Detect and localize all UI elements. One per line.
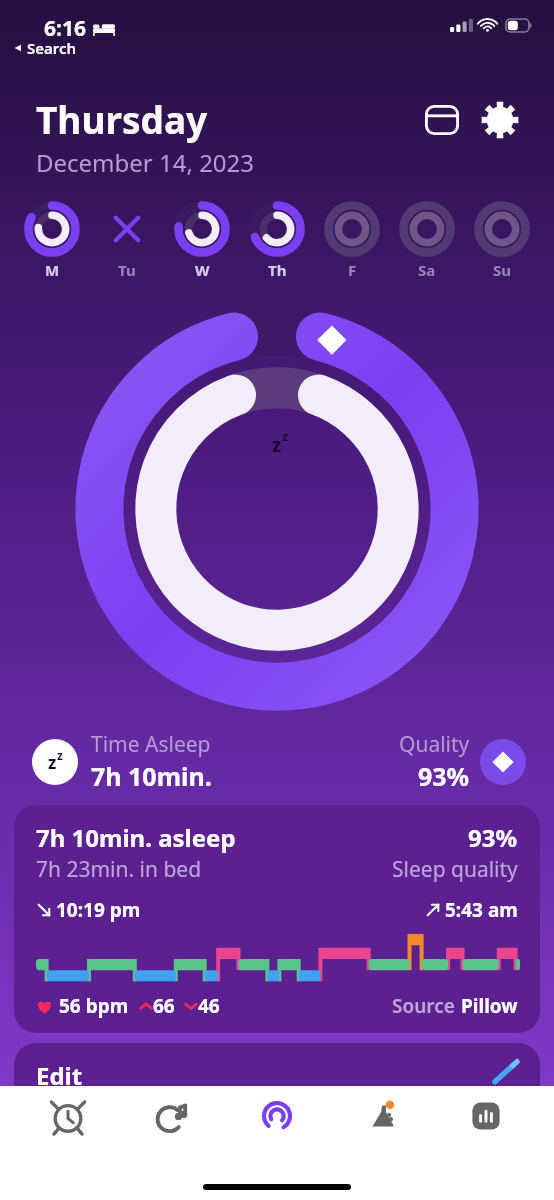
staticText: Thursday <box>36 94 208 144</box>
staticText: 93% <box>468 821 518 854</box>
staticText: 7h 10min. asleep <box>36 821 236 854</box>
staticText: Su <box>493 260 512 280</box>
staticText: 6:16 <box>44 14 86 43</box>
button[interactable]: Lab <box>345 1096 419 1154</box>
staticText: December 14, 2023 <box>36 146 255 179</box>
button[interactable]: Th <box>247 201 307 280</box>
staticText: z <box>57 747 63 763</box>
staticText: Tu <box>118 260 136 280</box>
button[interactable]: Sleep <box>240 1096 314 1154</box>
staticText: 7h 10min. <box>91 759 212 793</box>
staticText: Sa <box>418 260 436 280</box>
staticText: 93% <box>418 759 470 793</box>
staticText: F <box>348 260 357 280</box>
staticText: z <box>48 751 57 774</box>
staticText: Th <box>268 260 287 280</box>
staticText: 46 <box>198 993 220 1019</box>
staticText: Time Asleep <box>91 730 211 759</box>
staticText: 56 bpm <box>59 993 129 1019</box>
staticText: Quality <box>399 730 470 759</box>
staticText: 5:43 am <box>445 897 518 923</box>
staticText: Sleep quality <box>392 855 518 884</box>
button[interactable]: Su <box>472 201 532 280</box>
button[interactable]: W <box>172 201 232 280</box>
button[interactable]: Stats <box>449 1096 523 1154</box>
staticText: 7h 23min. in bed <box>36 855 202 884</box>
button[interactable]: Sounds <box>135 1096 209 1154</box>
staticText: z <box>272 432 282 458</box>
staticText: Source <box>392 993 455 1019</box>
button[interactable]: Sa <box>397 201 457 280</box>
staticText: z <box>282 427 289 445</box>
button[interactable]: Alarm <box>31 1096 105 1154</box>
button[interactable]: Tu <box>97 201 157 280</box>
staticText: Pillow <box>461 993 518 1019</box>
staticText: Search <box>27 38 77 58</box>
button[interactable]: M <box>22 201 82 280</box>
button[interactable]: Cards <box>416 94 468 146</box>
staticText: 66 <box>153 993 175 1019</box>
button[interactable]: F <box>322 201 382 280</box>
button[interactable]: Edit <box>14 1043 540 1086</box>
staticText: 10:19 pm <box>56 897 141 923</box>
staticText: M <box>45 260 60 280</box>
staticText: W <box>195 260 210 280</box>
staticText: Edit <box>36 1059 83 1086</box>
button[interactable]: 7h 10min. asleep <box>14 805 540 1033</box>
button[interactable]: Settings <box>474 94 526 146</box>
